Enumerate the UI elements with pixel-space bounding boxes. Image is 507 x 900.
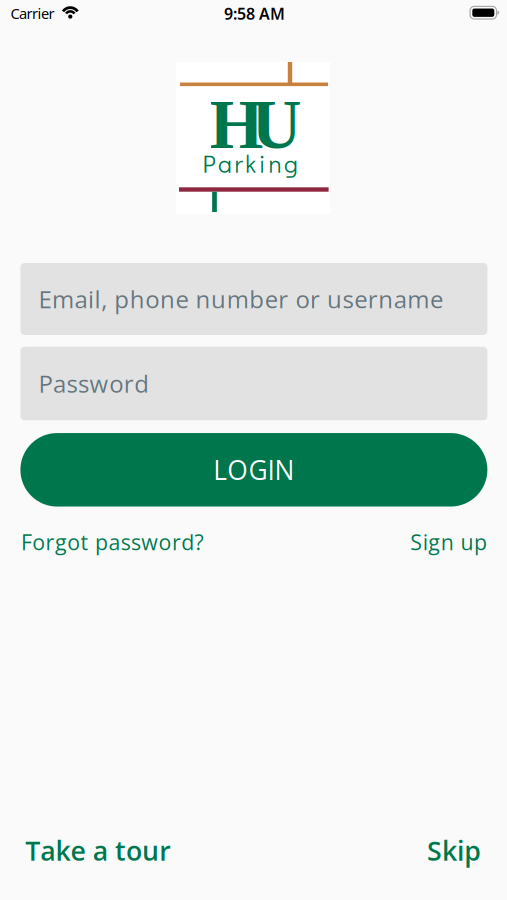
staticText: Email, phone number or username [38,283,443,315]
button[interactable]: Forgot password? [21,525,281,559]
staticText: HU [209,86,301,163]
staticText: Sign up [410,527,487,557]
staticText: 9:58 AM [224,3,285,24]
button[interactable]: Email, phone number or username [20,263,487,335]
button[interactable]: Password [20,347,487,420]
staticText: Parking [202,147,298,179]
staticText: Forgot password? [21,527,203,557]
staticText: Take a tour [25,832,171,868]
staticText: Password [38,367,149,400]
staticText: Carrier [10,4,54,23]
staticText: Skip [427,832,481,868]
button[interactable]: Skip [281,830,481,870]
button[interactable]: Sign up [287,525,487,559]
button[interactable]: LOGIN [20,433,487,507]
button[interactable]: Take a tour [25,830,285,870]
staticText: LOGIN [213,452,295,488]
